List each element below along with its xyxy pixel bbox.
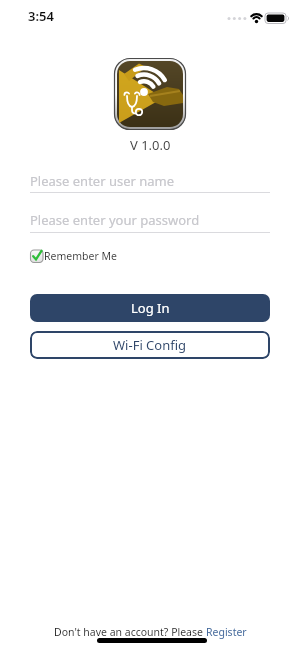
staticText: V 1.0.0	[130, 136, 171, 154]
staticText: Log In	[131, 299, 170, 317]
staticText: Don't have an account? Please	[54, 625, 206, 639]
staticText: Remember Me	[44, 249, 117, 263]
button[interactable]: Remember Me	[30, 249, 117, 263]
staticText: Please enter user name	[30, 172, 175, 190]
staticText: Wi-Fi Config	[113, 336, 187, 354]
button[interactable]: Register	[206, 625, 247, 639]
button[interactable]: Log In	[30, 294, 270, 322]
button[interactable]: Wi-Fi Config	[30, 331, 270, 359]
staticText: Please enter your password	[30, 211, 200, 229]
staticText: 3:54	[28, 7, 54, 25]
